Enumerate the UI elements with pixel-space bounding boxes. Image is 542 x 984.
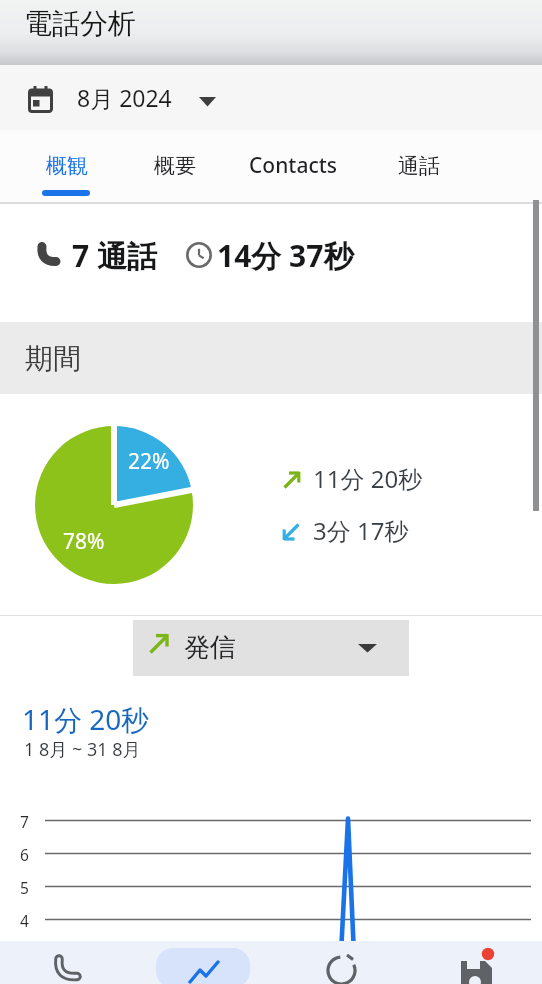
staticText: 11分 20秒 xyxy=(313,462,423,495)
staticText: 通話 xyxy=(398,153,440,179)
staticText: 7 xyxy=(20,811,29,832)
staticText: 8月 2024 xyxy=(77,82,172,113)
button[interactable]: 8月 2024 xyxy=(20,80,230,122)
staticText: 5 xyxy=(20,877,29,898)
button[interactable]: 通話 xyxy=(376,132,464,202)
staticText: 4 xyxy=(20,910,29,931)
button[interactable] xyxy=(405,941,542,984)
staticText: 期間 xyxy=(25,341,81,376)
staticText: 22% xyxy=(128,447,170,476)
button[interactable] xyxy=(135,941,270,984)
staticText: 14分 37秒 xyxy=(217,235,354,276)
staticText: 11分 20秒 xyxy=(22,700,150,738)
staticText: Contacts xyxy=(249,151,337,180)
staticText: 1 8月 ~ 31 8月 xyxy=(24,737,141,762)
button[interactable]: 発信 xyxy=(133,620,409,676)
button[interactable] xyxy=(270,941,405,984)
staticText: 6 xyxy=(20,844,29,865)
button[interactable]: Contacts xyxy=(232,132,356,202)
button[interactable] xyxy=(0,941,135,984)
staticText: 7 通話 xyxy=(72,235,157,276)
staticText: 発信 xyxy=(184,631,236,664)
staticText: 概観 xyxy=(46,153,88,179)
staticText: 78% xyxy=(63,527,105,556)
button[interactable]: 概要 xyxy=(132,132,220,202)
staticText: 概要 xyxy=(154,153,196,179)
staticText: 電話分析 xyxy=(24,6,136,41)
button[interactable]: 概観 xyxy=(24,132,108,202)
staticText: 3分 17秒 xyxy=(313,514,409,547)
